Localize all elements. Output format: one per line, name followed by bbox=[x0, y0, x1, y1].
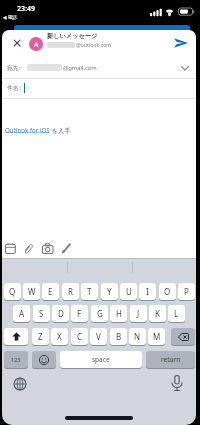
button[interactable] bbox=[171, 328, 195, 345]
button[interactable]: H bbox=[110, 305, 127, 322]
button[interactable] bbox=[32, 351, 56, 368]
staticText: I bbox=[146, 286, 149, 297]
staticText: @outlook.com bbox=[76, 41, 112, 48]
staticText: Y bbox=[107, 286, 112, 297]
staticText: P bbox=[184, 286, 189, 297]
staticText: G bbox=[97, 308, 103, 319]
button[interactable]: B bbox=[110, 328, 127, 345]
button[interactable]: S bbox=[33, 305, 50, 322]
button[interactable]: return bbox=[146, 351, 195, 368]
staticText: B bbox=[116, 331, 122, 342]
button[interactable]: Q bbox=[4, 283, 21, 300]
button[interactable]: D bbox=[52, 305, 69, 322]
staticText: space bbox=[92, 355, 110, 364]
staticText: S bbox=[39, 308, 44, 319]
button[interactable]: A bbox=[13, 305, 30, 322]
staticText: 新しいメッセージ bbox=[47, 32, 98, 40]
button[interactable] bbox=[171, 375, 183, 392]
staticText: ◀ 電話 bbox=[3, 14, 17, 20]
staticText: K bbox=[155, 308, 160, 319]
staticText: L bbox=[174, 308, 179, 319]
staticText: R bbox=[68, 286, 73, 297]
button[interactable]: N bbox=[129, 328, 146, 345]
button[interactable]: space bbox=[60, 351, 142, 368]
button[interactable]: L bbox=[168, 305, 185, 322]
button[interactable]: M bbox=[148, 328, 165, 345]
staticText: 123 bbox=[11, 356, 21, 363]
button[interactable]: P bbox=[178, 283, 195, 300]
staticText: return bbox=[161, 355, 181, 364]
button[interactable]: Y bbox=[101, 283, 118, 300]
button[interactable] bbox=[13, 377, 27, 391]
button[interactable]: O bbox=[159, 283, 176, 300]
button[interactable] bbox=[4, 328, 28, 345]
staticText: H bbox=[116, 308, 122, 319]
staticText: U bbox=[126, 286, 132, 297]
button[interactable] bbox=[10, 36, 24, 50]
staticText: 23:49 bbox=[17, 4, 35, 14]
staticText: Z bbox=[38, 331, 43, 342]
staticText: N bbox=[134, 331, 141, 342]
staticText: W bbox=[28, 286, 36, 297]
staticText: @gmail.com bbox=[63, 64, 97, 72]
button[interactable]: T bbox=[81, 283, 98, 300]
button[interactable]: K bbox=[149, 305, 166, 322]
staticText: X bbox=[57, 331, 62, 342]
button[interactable]: U bbox=[120, 283, 137, 300]
button[interactable]: 123 bbox=[4, 351, 28, 368]
staticText: M bbox=[153, 331, 161, 342]
staticText: V bbox=[96, 331, 101, 342]
staticText: を入手 bbox=[50, 126, 71, 134]
staticText: Q bbox=[9, 286, 16, 297]
button[interactable]: V bbox=[90, 328, 107, 345]
staticText: T bbox=[87, 286, 92, 297]
button[interactable]: C bbox=[71, 328, 88, 345]
staticText: O bbox=[164, 286, 171, 297]
button[interactable]: Outlook for iOS bbox=[5, 126, 50, 134]
staticText: D bbox=[58, 308, 64, 319]
staticText: C bbox=[77, 331, 83, 342]
staticText: F bbox=[77, 308, 82, 319]
button[interactable]: E bbox=[42, 283, 59, 300]
button[interactable]: J bbox=[130, 305, 147, 322]
button[interactable]: G bbox=[91, 305, 108, 322]
staticText: A bbox=[34, 40, 39, 49]
button[interactable] bbox=[173, 37, 189, 49]
staticText: A bbox=[19, 308, 25, 319]
staticText: 宛先: bbox=[7, 64, 21, 72]
button[interactable]: Z bbox=[32, 328, 49, 345]
button[interactable]: X bbox=[51, 328, 68, 345]
staticText: 件名: bbox=[7, 84, 21, 92]
staticText: E bbox=[48, 286, 53, 297]
button[interactable]: R bbox=[62, 283, 79, 300]
button[interactable]: F bbox=[71, 305, 88, 322]
staticText: J bbox=[137, 308, 140, 319]
button[interactable]: I bbox=[139, 283, 156, 300]
button[interactable]: W bbox=[23, 283, 40, 300]
